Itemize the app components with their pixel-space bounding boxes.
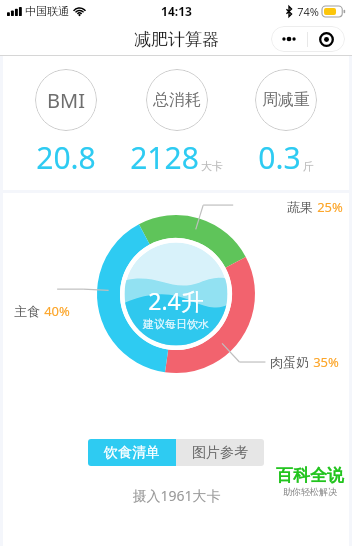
staticText: 20.8 [36, 137, 96, 178]
staticText: 25% [317, 198, 343, 216]
button[interactable]: More [271, 26, 307, 52]
staticText: 40% [44, 302, 70, 320]
staticText: 摄入1961大卡 [132, 486, 221, 505]
staticText: 周减重 [262, 90, 310, 110]
staticText: 14:13 [161, 3, 192, 19]
staticText: 百科全说 [276, 465, 344, 486]
staticText: 中国联通 [25, 4, 69, 18]
staticText: 助你轻松解决 [283, 486, 337, 497]
staticText: 饮食清单 [104, 444, 160, 462]
staticText: 大卡 [201, 159, 223, 173]
staticText: 2128 [130, 137, 199, 178]
staticText: 35% [313, 353, 339, 371]
staticText: BMI [47, 87, 85, 114]
staticText: 74% [297, 4, 319, 19]
button[interactable]: 饮食清单 [88, 439, 176, 466]
staticText: 减肥计算器 [134, 29, 219, 50]
button[interactable]: Close [308, 26, 345, 52]
staticText: 主食 [14, 303, 40, 319]
staticText: 0.3 [258, 137, 301, 178]
staticText: 图片参考 [192, 444, 248, 462]
staticText: 肉蛋奶 [270, 354, 309, 370]
staticText: 斤 [303, 159, 314, 173]
staticText: 蔬果 [287, 199, 313, 215]
staticText: 建议每日饮水 [143, 317, 209, 331]
staticText: 2.4升 [148, 285, 204, 316]
staticText: 总消耗 [153, 90, 201, 110]
button[interactable]: 图片参考 [176, 439, 264, 466]
